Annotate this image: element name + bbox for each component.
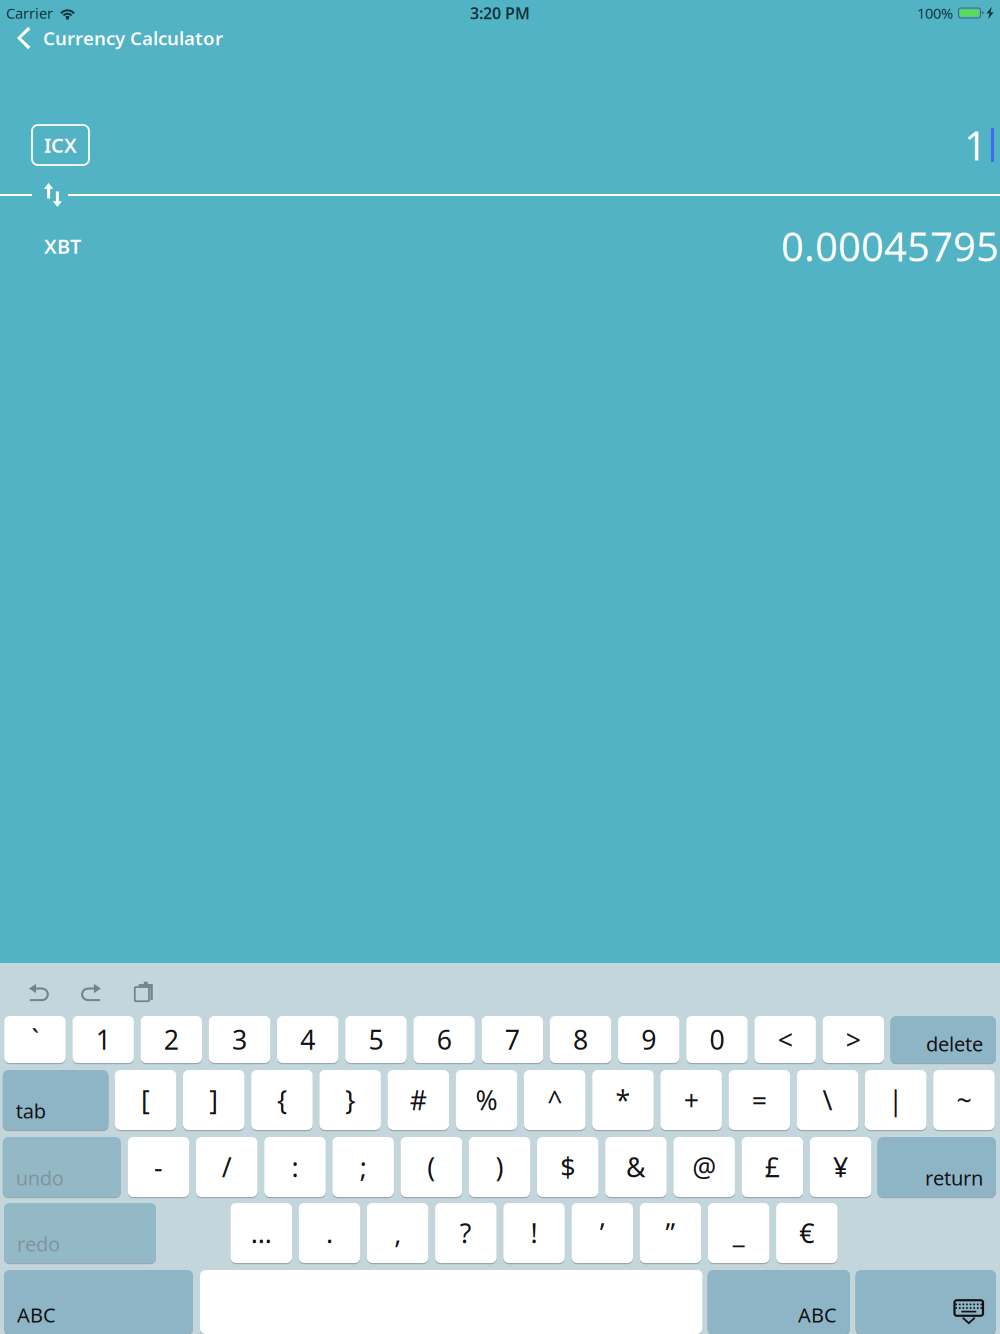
- button[interactable]: 0: [686, 1016, 748, 1063]
- button[interactable]: XBT: [42, 225, 83, 267]
- staticText: £: [765, 1149, 780, 1185]
- staticText: €: [799, 1215, 814, 1251]
- button[interactable]: /: [196, 1137, 257, 1197]
- staticText: >: [846, 1022, 861, 1057]
- staticText: .: [326, 1215, 333, 1251]
- button[interactable]: Hide keyboard: [855, 1270, 996, 1334]
- button[interactable]: `: [4, 1016, 66, 1063]
- staticText: {: [277, 1082, 287, 1118]
- button[interactable]: *: [592, 1070, 654, 1130]
- button[interactable]: :: [264, 1137, 326, 1197]
- button[interactable]: 6: [413, 1016, 475, 1063]
- button[interactable]: ¥: [810, 1137, 871, 1197]
- button[interactable]: Swap currencies: [44, 183, 62, 207]
- staticText: 0.00045795: [781, 219, 999, 272]
- button[interactable]: ?: [435, 1203, 497, 1263]
- button[interactable]: }: [319, 1070, 381, 1130]
- staticText: (: [427, 1149, 435, 1185]
- staticText: ICX: [44, 132, 77, 158]
- staticText: Carrier: [6, 3, 53, 23]
- staticText: *: [615, 1082, 630, 1118]
- staticText: ~: [956, 1082, 971, 1118]
- staticText: 6: [437, 1022, 452, 1057]
- staticText: [: [141, 1082, 150, 1118]
- button[interactable]: {: [251, 1070, 313, 1130]
- button[interactable]: Currency Calculator: [0, 18, 233, 58]
- button[interactable]: ^: [524, 1070, 585, 1130]
- staticText: …: [251, 1215, 272, 1251]
- button[interactable]: 8: [550, 1016, 611, 1063]
- button[interactable]: undo: [3, 1137, 121, 1197]
- button[interactable]: &: [605, 1137, 667, 1197]
- staticText: 8: [573, 1022, 588, 1057]
- button[interactable]: Undo: [20, 974, 57, 1009]
- staticText: }: [345, 1082, 355, 1118]
- staticText: return: [925, 1164, 983, 1191]
- button[interactable]: redo: [4, 1203, 156, 1263]
- staticText: ^: [547, 1082, 562, 1118]
- button[interactable]: (: [401, 1137, 462, 1197]
- button[interactable]: Paste: [127, 974, 161, 1009]
- button[interactable]: delete: [890, 1016, 996, 1063]
- button[interactable]: =: [729, 1070, 790, 1130]
- button[interactable]: 2: [141, 1016, 202, 1063]
- button[interactable]: ABC: [4, 1270, 193, 1334]
- staticText: <: [778, 1022, 793, 1057]
- button[interactable]: !: [503, 1203, 565, 1263]
- staticText: !: [530, 1215, 537, 1251]
- staticText: tab: [16, 1097, 46, 1124]
- button[interactable]: -: [128, 1137, 189, 1197]
- button[interactable]: return: [877, 1137, 996, 1197]
- staticText: @: [692, 1149, 716, 1185]
- staticText: ’: [600, 1215, 605, 1251]
- button[interactable]: 1: [72, 1016, 134, 1063]
- staticText: Currency Calculator: [43, 26, 223, 50]
- button[interactable]: €: [776, 1203, 838, 1263]
- button[interactable]: ]: [183, 1070, 244, 1130]
- button[interactable]: ABC: [707, 1270, 850, 1334]
- staticText: `: [31, 1022, 38, 1057]
- staticText: _: [733, 1215, 745, 1251]
- button[interactable]: 7: [482, 1016, 543, 1063]
- button[interactable]: ): [469, 1137, 530, 1197]
- staticText: delete: [926, 1030, 983, 1057]
- staticText: |: [888, 1082, 903, 1118]
- button[interactable]: ~: [933, 1070, 995, 1130]
- staticText: 7: [505, 1022, 520, 1057]
- staticText: 9: [641, 1022, 656, 1057]
- staticText: 1: [96, 1022, 111, 1057]
- button[interactable]: @: [673, 1137, 735, 1197]
- button[interactable]: >: [823, 1016, 884, 1063]
- button[interactable]: #: [388, 1070, 449, 1130]
- button[interactable]: .: [299, 1203, 360, 1263]
- button[interactable]: Redo: [72, 974, 109, 1009]
- button[interactable]: ’: [571, 1203, 633, 1263]
- button[interactable]: %: [456, 1070, 517, 1130]
- staticText: \: [822, 1082, 832, 1118]
- button[interactable]: $: [537, 1137, 598, 1197]
- button[interactable]: tab: [3, 1070, 108, 1130]
- staticText: ;: [360, 1149, 367, 1185]
- button[interactable]: ;: [332, 1137, 394, 1197]
- button[interactable]: £: [742, 1137, 803, 1197]
- button[interactable]: ICX: [32, 125, 89, 165]
- button[interactable]: 5: [345, 1016, 407, 1063]
- button[interactable]: \: [797, 1070, 858, 1130]
- button[interactable]: …: [230, 1203, 292, 1263]
- staticText: ABC: [17, 1301, 56, 1328]
- button[interactable]: _: [708, 1203, 769, 1263]
- button[interactable]: 4: [277, 1016, 338, 1063]
- button[interactable]: <: [754, 1016, 816, 1063]
- button[interactable]: ”: [640, 1203, 701, 1263]
- button[interactable]: 9: [618, 1016, 679, 1063]
- button[interactable]: ,: [367, 1203, 428, 1263]
- button[interactable]: |: [865, 1070, 926, 1130]
- button[interactable]: +: [660, 1070, 722, 1130]
- staticText: :: [291, 1149, 298, 1185]
- staticText: 0: [709, 1022, 724, 1057]
- button[interactable]: [: [115, 1070, 176, 1130]
- button[interactable]: 3: [209, 1016, 270, 1063]
- staticText: ”: [665, 1215, 675, 1251]
- staticText: -: [154, 1149, 163, 1185]
